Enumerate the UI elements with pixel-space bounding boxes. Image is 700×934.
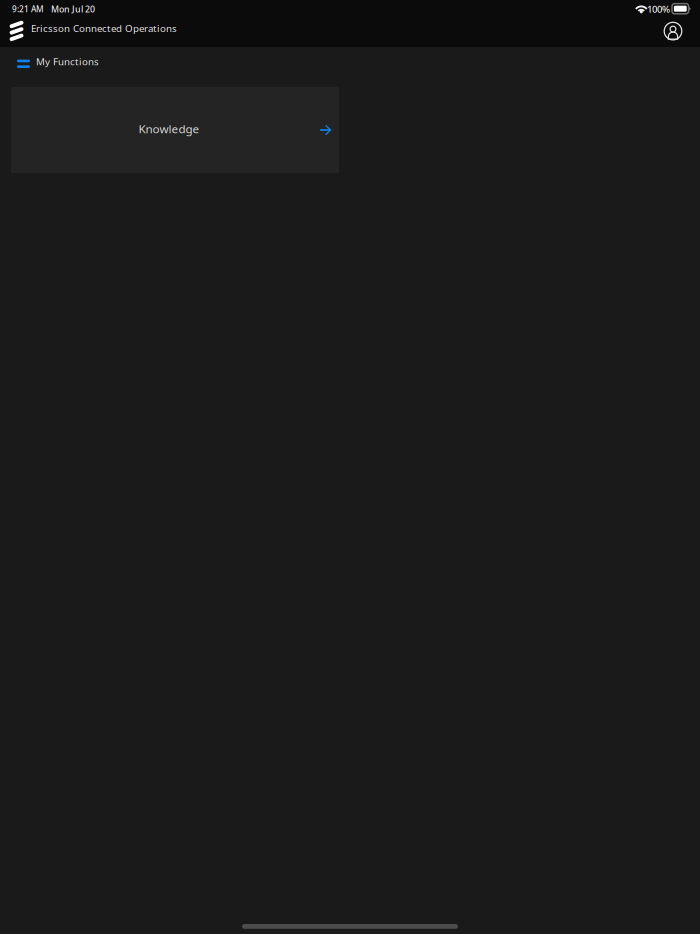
button[interactable]: Knowledge: [11, 87, 339, 173]
staticText: Mon Jul 20: [51, 3, 95, 15]
staticText: Knowledge: [138, 121, 199, 137]
button[interactable]: Account: [658, 17, 688, 47]
staticText: 100%: [647, 2, 670, 15]
staticText: My Functions: [36, 55, 99, 68]
staticText: 9:21 AM: [12, 3, 44, 15]
staticText: Ericsson Connected Operations: [31, 22, 177, 35]
